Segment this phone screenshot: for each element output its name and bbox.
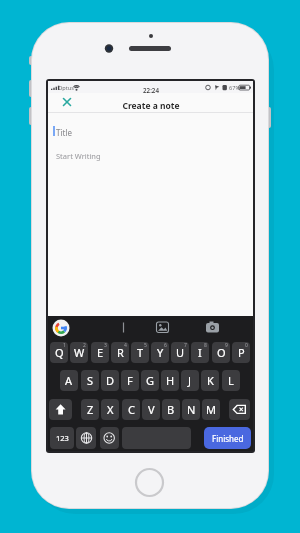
staticText: A xyxy=(65,373,73,388)
staticText: J xyxy=(188,373,192,388)
button[interactable] xyxy=(58,93,76,111)
staticText: 9 xyxy=(225,342,228,349)
button[interactable]: U xyxy=(171,342,189,363)
button[interactable] xyxy=(52,319,70,337)
button[interactable]: N xyxy=(182,399,200,420)
staticText: 67% xyxy=(229,84,241,92)
staticText: R xyxy=(117,345,124,360)
staticText: W xyxy=(74,345,85,360)
button[interactable]: O xyxy=(212,342,230,363)
staticText: 3 xyxy=(104,342,107,349)
staticText: U xyxy=(176,345,185,360)
button[interactable]: J xyxy=(181,370,199,391)
staticText: K xyxy=(207,373,214,388)
button[interactable]: S xyxy=(81,370,99,391)
staticText: Finished xyxy=(212,433,244,444)
button[interactable]: D xyxy=(101,370,119,391)
staticText: C xyxy=(128,402,135,417)
staticText: E xyxy=(97,345,104,360)
button[interactable]: F xyxy=(121,370,139,391)
button[interactable]: L xyxy=(222,370,240,391)
staticText: V xyxy=(148,402,155,417)
button[interactable] xyxy=(204,319,221,336)
staticText: 1 xyxy=(63,342,66,349)
staticText: Q xyxy=(55,345,64,360)
staticText: G xyxy=(146,373,155,388)
button[interactable]: T xyxy=(131,342,149,363)
button[interactable]: Z xyxy=(81,399,99,420)
button[interactable]: Finished xyxy=(204,427,251,449)
staticText: 8 xyxy=(204,342,207,349)
button[interactable] xyxy=(229,399,250,420)
staticText: 4 xyxy=(124,342,127,349)
staticText: B xyxy=(167,402,175,417)
staticText: Create a note xyxy=(122,100,180,112)
staticText: 6 xyxy=(164,342,167,349)
staticText: M xyxy=(206,402,216,417)
staticText: D xyxy=(106,373,115,388)
button[interactable]: X xyxy=(101,399,119,420)
button[interactable]: 123 xyxy=(50,427,74,449)
staticText: H xyxy=(166,373,175,388)
staticText: S xyxy=(87,373,94,388)
staticText: L xyxy=(228,373,234,388)
staticText: T xyxy=(137,345,144,360)
button[interactable]: R xyxy=(111,342,129,363)
staticText: Z xyxy=(87,402,94,417)
button[interactable]: I xyxy=(191,342,209,363)
button[interactable]: Y xyxy=(151,342,169,363)
staticText: F xyxy=(127,373,133,388)
staticText: P xyxy=(238,345,245,360)
staticText: O xyxy=(217,345,226,360)
button[interactable]: B xyxy=(162,399,180,420)
button[interactable] xyxy=(76,427,96,449)
button[interactable]: V xyxy=(142,399,160,420)
button[interactable]: C xyxy=(122,399,140,420)
button[interactable]: M xyxy=(202,399,220,420)
staticText: I xyxy=(198,345,202,360)
staticText: 22:24 xyxy=(143,86,159,94)
button[interactable]: P xyxy=(232,342,250,363)
button[interactable]: W xyxy=(70,342,88,363)
staticText: Optus xyxy=(58,84,74,92)
button[interactable]: H xyxy=(161,370,179,391)
staticText: 7 xyxy=(184,342,187,349)
staticText: 123 xyxy=(56,433,69,443)
button[interactable] xyxy=(49,399,72,420)
staticText: X xyxy=(107,402,114,417)
button[interactable]: K xyxy=(201,370,219,391)
staticText: 2 xyxy=(83,342,86,349)
staticText: Title xyxy=(56,127,72,138)
button[interactable]: Q xyxy=(50,342,68,363)
staticText: Y xyxy=(157,345,164,360)
button[interactable]: E xyxy=(91,342,109,363)
button[interactable]: G xyxy=(141,370,159,391)
staticText: 5 xyxy=(144,342,147,349)
button[interactable] xyxy=(100,427,119,449)
staticText: N xyxy=(187,402,196,417)
staticText: 0 xyxy=(245,342,248,349)
staticText: Start Writing xyxy=(56,151,101,161)
button[interactable]: A xyxy=(60,370,78,391)
button[interactable] xyxy=(154,319,171,336)
